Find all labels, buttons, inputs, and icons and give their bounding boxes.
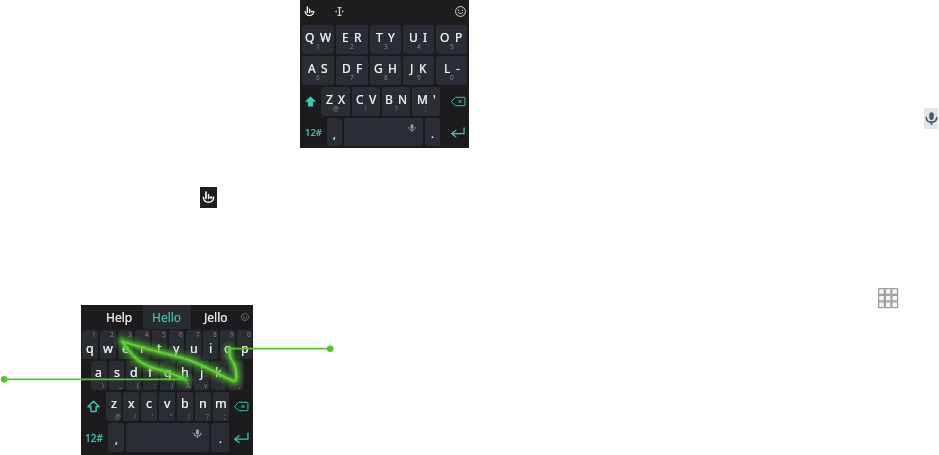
staticText: P [455, 29, 463, 45]
staticText: g [164, 364, 172, 381]
button[interactable]: Move cursor [331, 0, 347, 23]
button[interactable]: Z [321, 87, 350, 116]
button[interactable]: 3 [118, 330, 133, 359]
staticText: b [181, 395, 189, 412]
button[interactable]: G [370, 56, 401, 85]
button[interactable]: L [436, 56, 467, 85]
button[interactable]: 6 [169, 330, 184, 359]
button[interactable]: j [194, 361, 209, 390]
button[interactable]: Emoji [237, 305, 253, 329]
button[interactable]: A [302, 56, 334, 85]
staticText: k [215, 364, 222, 381]
button[interactable]: D [336, 56, 368, 85]
button[interactable]: U [403, 25, 434, 54]
button[interactable]: 12# [301, 117, 326, 147]
button[interactable]: s [109, 361, 124, 390]
staticText: 8 [384, 73, 388, 82]
staticText: R [354, 29, 362, 45]
staticText: ? [206, 412, 209, 421]
staticText: I [423, 29, 428, 45]
staticText: L [444, 60, 451, 76]
staticText: D [342, 60, 351, 76]
button[interactable]: 12# [81, 422, 107, 453]
button[interactable]: 8 [203, 330, 218, 359]
button[interactable]: Backspace [230, 391, 253, 422]
button[interactable]: Q [302, 25, 334, 54]
staticText: 3 [384, 42, 388, 51]
button[interactable]: Space [126, 423, 209, 452]
staticText: A [308, 60, 316, 76]
button[interactable]: E [336, 25, 368, 54]
staticText: y [173, 340, 180, 357]
button[interactable]: Enter [441, 117, 468, 147]
staticText: G [374, 60, 383, 76]
button[interactable]: a [91, 361, 107, 390]
button[interactable]: d [126, 361, 141, 390]
button[interactable]: Enter [230, 422, 253, 453]
button[interactable]: h [177, 361, 192, 390]
button[interactable]: Backspace [441, 86, 468, 117]
button[interactable]: C [352, 87, 380, 116]
button[interactable]: 9 [220, 330, 235, 359]
button[interactable]: Shift [301, 86, 320, 117]
staticText: d [130, 364, 138, 381]
button[interactable]: n [195, 392, 211, 421]
staticText: 0 [450, 73, 454, 82]
button[interactable]: . [211, 423, 229, 452]
staticText: K [419, 60, 427, 76]
staticText: C [356, 91, 364, 107]
staticText: . [222, 381, 224, 390]
button[interactable]: 5 [152, 330, 167, 359]
button[interactable]: Shift [81, 391, 105, 422]
staticText: - [456, 60, 460, 76]
button[interactable]: Help [95, 305, 143, 329]
button[interactable]: , [327, 118, 342, 146]
staticText: , [239, 381, 241, 390]
button[interactable]: k [211, 361, 226, 390]
button[interactable]: Jello [192, 305, 240, 329]
staticText: 12# [85, 431, 103, 445]
button[interactable]: T [370, 25, 401, 54]
button[interactable]: 1 [82, 330, 98, 359]
button[interactable]: Space [344, 118, 423, 146]
button[interactable]: Gesture typing [301, 0, 317, 23]
staticText: 4 [417, 42, 421, 51]
staticText: 5 [450, 42, 454, 51]
button[interactable]: x [123, 392, 139, 421]
staticText: 7 [350, 73, 354, 82]
button[interactable]: Gesture typing [200, 187, 217, 208]
staticText: 1 [92, 330, 96, 339]
button[interactable]: z [106, 392, 121, 421]
button[interactable]: J [403, 56, 434, 85]
button[interactable]: , [108, 423, 124, 452]
staticText: m [215, 395, 227, 412]
button[interactable]: l [228, 361, 243, 390]
button[interactable]: Emoji [452, 0, 468, 23]
button[interactable]: 7 [186, 330, 201, 359]
staticText: ! [365, 104, 367, 113]
button[interactable]: m [213, 392, 229, 421]
button[interactable]: f [143, 361, 158, 390]
button[interactable]: B [382, 87, 410, 116]
button[interactable]: g [160, 361, 175, 390]
staticText: a [95, 364, 103, 381]
staticText: , [115, 432, 118, 447]
staticText: p [241, 340, 249, 357]
button[interactable]: 4 [135, 330, 150, 359]
button[interactable]: Voice input [924, 108, 938, 129]
button[interactable]: c [141, 392, 157, 421]
staticText: V [369, 91, 377, 107]
staticText: Q [305, 29, 315, 45]
staticText: \ [102, 381, 105, 390]
staticText: v [164, 395, 171, 412]
button[interactable]: 2 [100, 330, 116, 359]
button[interactable]: M [412, 87, 440, 116]
button[interactable]: Hello [143, 305, 191, 329]
button[interactable]: 0 [237, 330, 252, 359]
button[interactable]: O [436, 25, 467, 54]
button[interactable]: v [159, 392, 175, 421]
button[interactable]: Keyboard layouts [876, 286, 898, 308]
button[interactable]: b [177, 392, 193, 421]
staticText: ) [171, 381, 173, 390]
button[interactable]: . [425, 118, 440, 146]
